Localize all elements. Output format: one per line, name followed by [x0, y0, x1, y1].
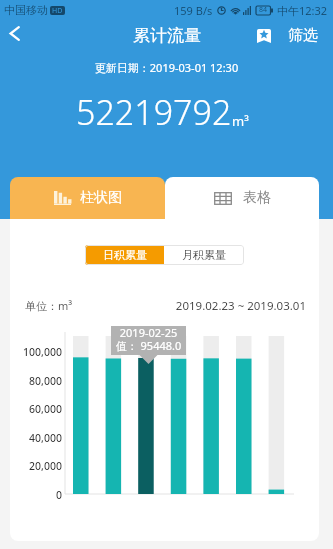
staticText: 40,000 — [10, 431, 62, 445]
staticText: 中午12:32 — [277, 3, 328, 18]
staticText: 20,000 — [10, 459, 62, 473]
button[interactable]: 柱状图 — [10, 177, 165, 219]
staticText: 表格 — [243, 189, 271, 207]
staticText: m³ — [232, 112, 249, 130]
staticText: 2019-02-25 — [111, 325, 186, 340]
staticText: 更新日期：2019-03-01 12:30 — [0, 60, 333, 75]
staticText: 值： 95448.0 — [111, 338, 186, 353]
button[interactable]: 月积累量 — [164, 245, 244, 265]
staticText: 月积累量 — [182, 248, 226, 262]
staticText: 筛选 — [288, 26, 318, 45]
staticText: 柱状图 — [80, 189, 122, 207]
staticText: 2019.02.23 ~ 2019.03.01 — [110, 298, 306, 314]
button[interactable]: Back — [0, 18, 29, 49]
button[interactable]: 日积累量 — [85, 245, 164, 265]
staticText: 累计流量 — [133, 25, 201, 46]
staticText: HD — [52, 6, 63, 15]
staticText: 中国移动 — [4, 3, 48, 17]
staticText: 100,000 — [10, 345, 62, 359]
staticText: 52219792 — [76, 89, 232, 135]
button[interactable]: 表格 — [165, 177, 319, 219]
button[interactable]: 筛选 — [257, 26, 318, 45]
staticText: 单位：m³ — [25, 298, 73, 313]
staticText: 60,000 — [10, 402, 62, 416]
staticText: 159 B/s — [174, 3, 213, 18]
staticText: 80,000 — [10, 374, 62, 388]
staticText: 0 — [10, 488, 62, 502]
staticText: 84 — [259, 5, 268, 15]
staticText: 日积累量 — [103, 248, 147, 262]
